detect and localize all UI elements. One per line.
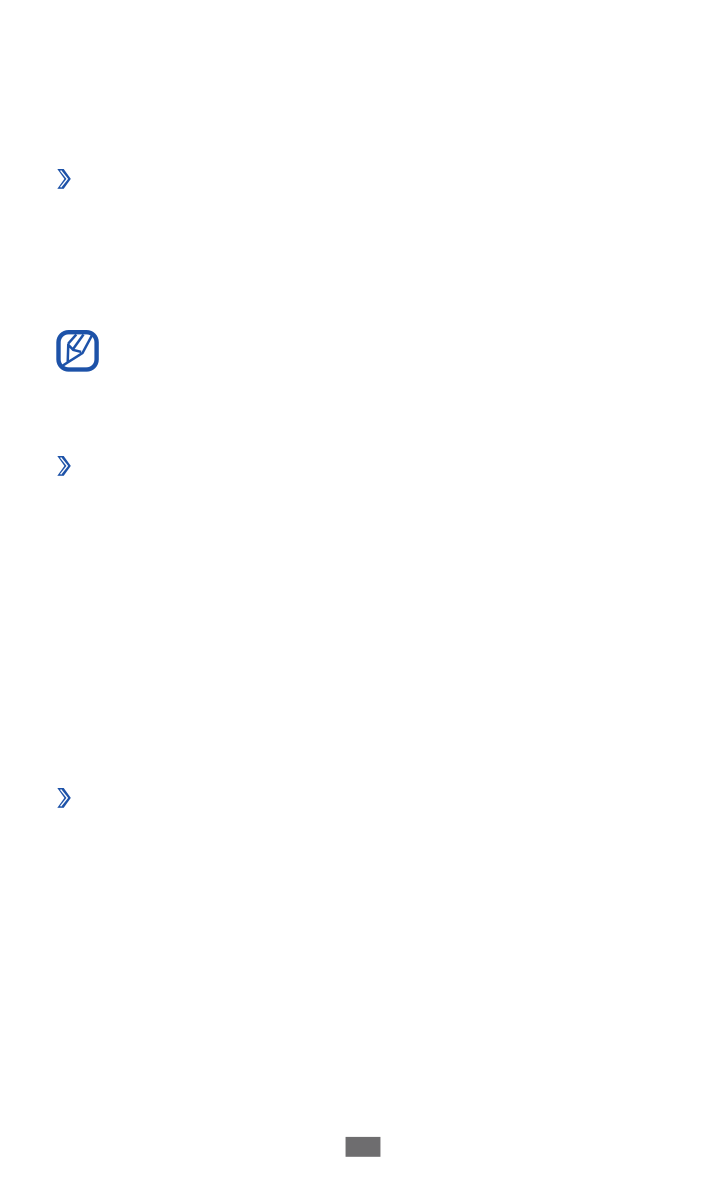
button[interactable]: Note [56, 330, 99, 372]
button[interactable]: Section [57, 456, 71, 476]
button[interactable]: Section [57, 788, 71, 808]
button[interactable]: Section [57, 169, 71, 189]
